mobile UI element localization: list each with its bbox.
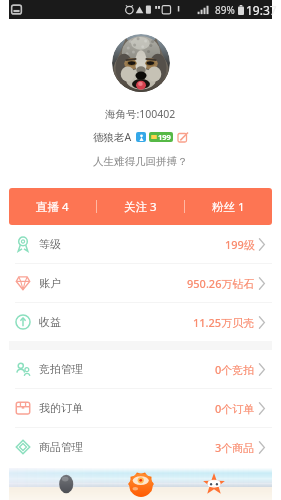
staticText: 11.25万贝壳 [193,315,255,330]
staticText: 0个订单 [215,401,255,416]
button[interactable]: 账户 [9,264,272,302]
staticText: 海角号:100402 [105,107,176,121]
staticText: 人生难得几回拼搏？ [93,155,188,168]
button[interactable]: 等级 [9,225,272,263]
button[interactable]: 我的订单 [9,389,272,427]
button[interactable]: 商品管理 [9,428,272,466]
button[interactable]: 粉丝 1 [185,188,272,225]
staticText: 等级 [39,237,61,251]
staticText: 我的订单 [39,401,83,415]
staticText: 关注 3 [124,199,157,215]
staticText: 199级 [225,237,255,252]
button[interactable]: 直播 4 [9,188,96,225]
staticText: 收益 [39,315,61,329]
staticText: 950.26万钻石 [187,276,255,291]
button[interactable]: 编辑资料 [177,132,188,143]
staticText: 89% [215,3,235,17]
staticText: 商品管理 [39,440,83,454]
staticText: 199 [158,132,171,142]
staticText: 粉丝 1 [212,199,245,215]
button[interactable]: 关注 3 [97,188,184,225]
staticText: 账户 [39,276,61,290]
staticText: 3个商品 [215,440,255,455]
button[interactable]: 头像 [112,34,170,92]
button[interactable]: 我的 [201,471,227,497]
button[interactable]: 首页 [54,471,80,497]
staticText: 0个竞拍 [215,362,255,377]
button[interactable]: 发布 [128,471,154,497]
button[interactable]: 竞拍管理 [9,350,272,388]
staticText: 德狼老A [93,130,132,144]
staticText: 竞拍管理 [39,362,83,376]
staticText: 19:37 [246,2,277,18]
staticText: 直播 4 [36,199,69,215]
button[interactable]: 收益 [9,303,272,341]
